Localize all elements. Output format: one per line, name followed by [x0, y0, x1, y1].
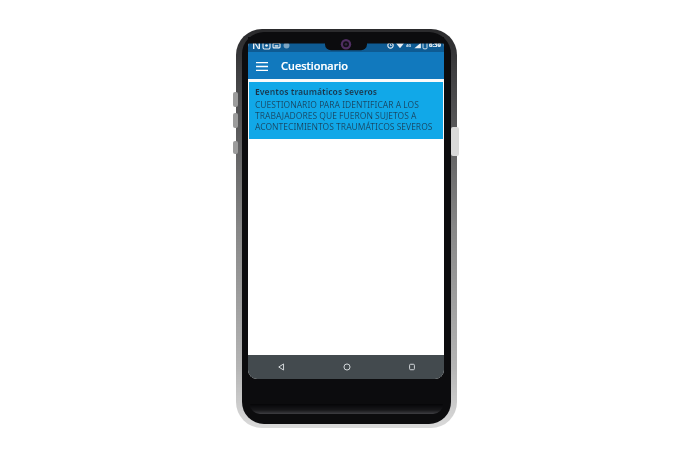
button[interactable]: Open navigation menu — [252, 56, 272, 76]
staticText: CUESTIONARIO PARA IDENTIFICAR A LOS TRAB… — [255, 99, 438, 132]
button[interactable]: Assistant — [233, 141, 238, 154]
button[interactable]: Recent apps — [379, 355, 444, 379]
button[interactable]: Back — [248, 355, 314, 379]
staticText: Cuestionario — [281, 58, 348, 73]
button[interactable]: Eventos traumáticos Severos — [249, 82, 443, 139]
button[interactable]: Volume down — [233, 113, 238, 128]
staticText: Eventos traumáticos Severos — [255, 86, 378, 98]
button[interactable]: Volume up — [233, 92, 238, 107]
button[interactable]: Power — [451, 127, 459, 156]
button[interactable]: Home — [314, 355, 379, 379]
staticText: 4G — [406, 43, 412, 48]
staticText: 6:39 — [429, 41, 441, 49]
